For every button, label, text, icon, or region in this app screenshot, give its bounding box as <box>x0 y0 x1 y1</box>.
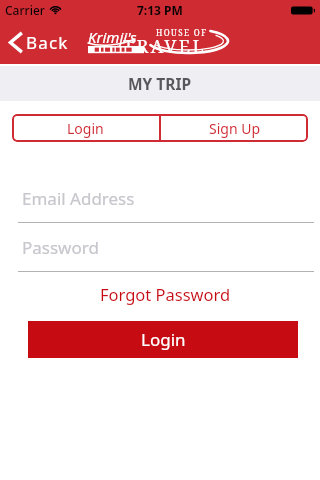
staticText: Forgot Password <box>100 283 231 305</box>
staticText: 7:13 PM <box>137 2 183 18</box>
staticText: Login <box>141 328 186 351</box>
staticText: TRAVEL <box>123 34 207 59</box>
button[interactable]: Forgot Password <box>30 283 300 305</box>
button[interactable]: Login <box>28 321 298 358</box>
button[interactable]: Sign Up <box>161 114 308 142</box>
staticText: Carrier <box>5 2 45 18</box>
staticText: HOUSE OF <box>156 27 208 38</box>
staticText: Email Address <box>22 187 135 210</box>
staticText: Login <box>67 119 104 138</box>
other: Back <box>9 32 23 53</box>
staticText: Krimji's <box>88 27 137 47</box>
staticText: Back <box>26 31 69 54</box>
staticText: Sign Up <box>209 119 261 138</box>
staticText: MY TRIP <box>128 73 192 94</box>
staticText: Password <box>22 236 99 259</box>
button[interactable]: Back <box>9 31 69 54</box>
button[interactable]: Login <box>12 114 159 142</box>
